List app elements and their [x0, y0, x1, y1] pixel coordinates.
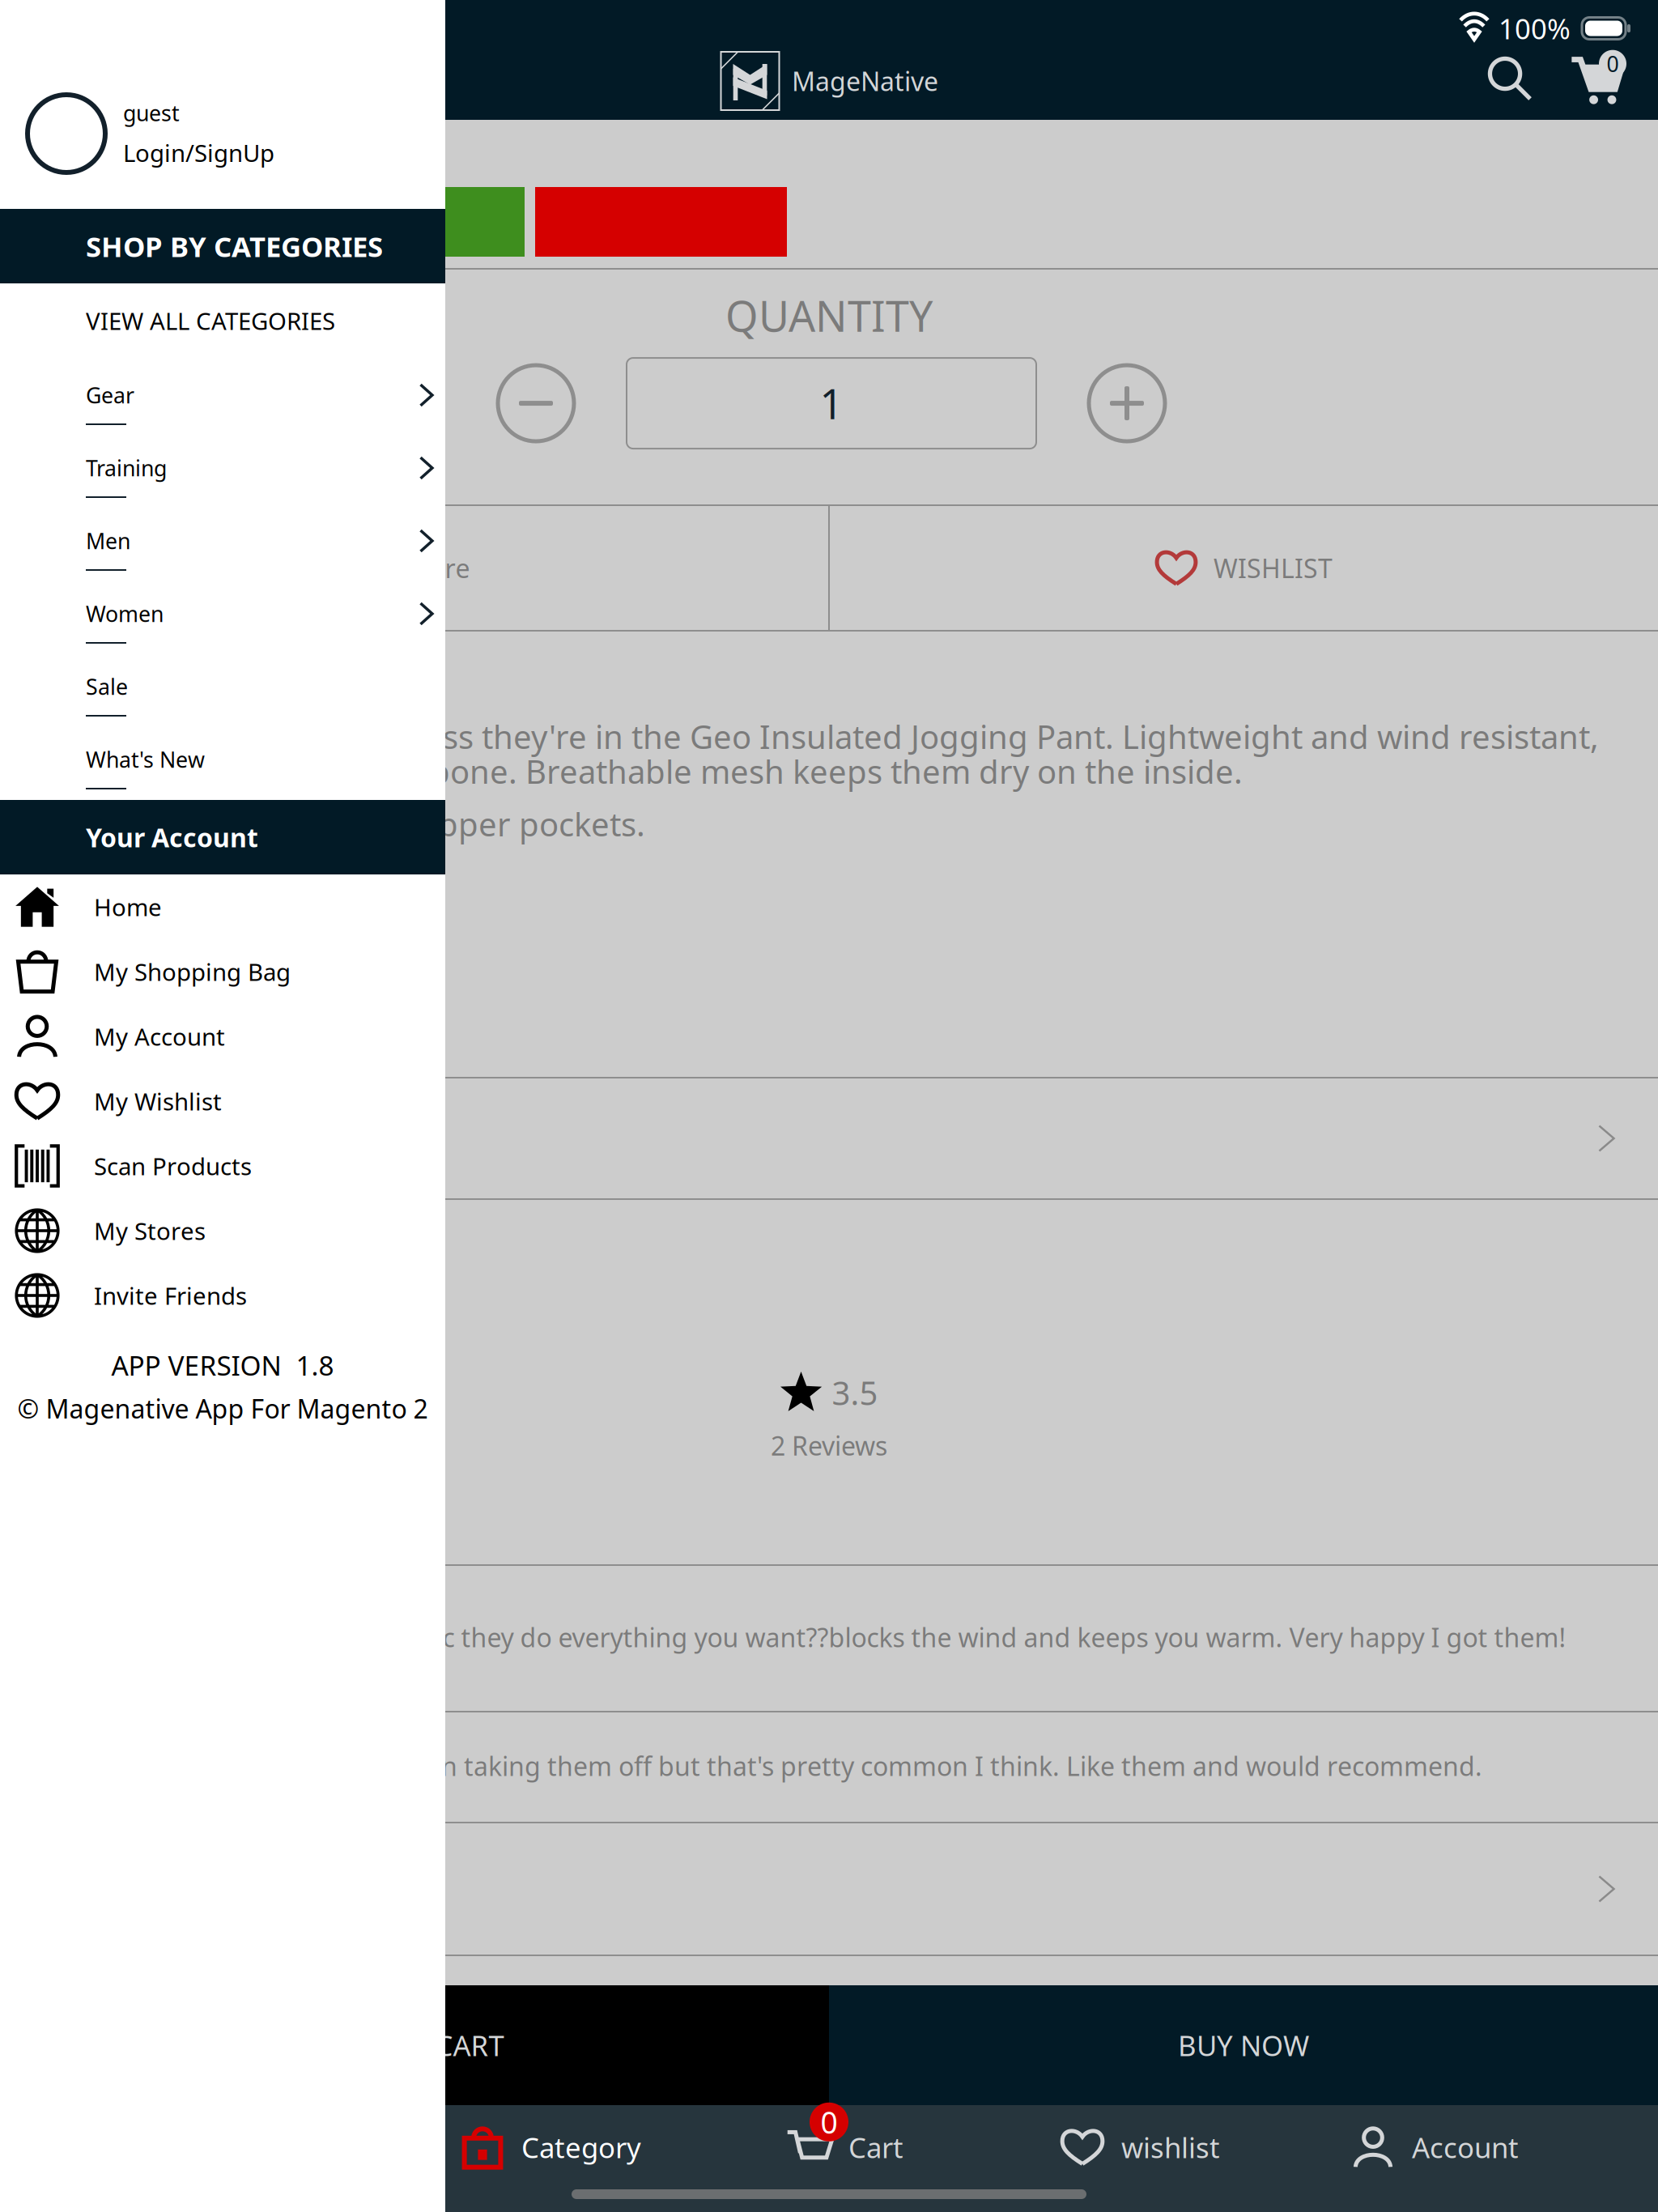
- staticText: MageNative: [792, 64, 938, 98]
- staticText: What's New: [86, 745, 205, 774]
- staticText: Category: [521, 2129, 641, 2166]
- button[interactable]: Men: [0, 508, 445, 581]
- staticText: guest: [123, 99, 180, 127]
- button[interactable]: MORE INFORMATION: [0, 1078, 1658, 1198]
- button[interactable]: WISHLIST: [830, 506, 1658, 630]
- button[interactable]: Increase quantity: [1080, 356, 1174, 450]
- button[interactable]: Customer Reviews: [0, 1823, 1658, 1955]
- staticText: Sale: [86, 672, 128, 701]
- button[interactable]: What's New: [0, 727, 445, 800]
- staticText: BUY NOW: [1178, 2027, 1309, 2064]
- button[interactable]: BUY NOW: [829, 1985, 1658, 2105]
- button[interactable]: Women: [0, 581, 445, 654]
- staticText: 1: [820, 376, 843, 430]
- staticText: Cart: [848, 2129, 903, 2166]
- staticText: 3.5: [832, 1371, 878, 1414]
- staticText: Gear: [86, 381, 134, 409]
- button[interactable]: 0: [696, 2110, 991, 2184]
- button[interactable]: Search: [1473, 42, 1545, 113]
- staticText: 0: [820, 2102, 838, 2142]
- button[interactable]: Category: [402, 2110, 696, 2184]
- staticText: WISHLIST: [1214, 551, 1333, 585]
- button[interactable]: guest: [0, 0, 445, 209]
- button[interactable]: My Stores: [0, 1198, 445, 1263]
- staticText: My Wishlist: [94, 1085, 222, 1117]
- button[interactable]: Sale: [0, 654, 445, 727]
- button[interactable]: Decrease quantity: [489, 356, 583, 450]
- button[interactable]: My Account: [0, 1004, 445, 1069]
- button[interactable]: VIEW ALL CATEGORIES: [0, 283, 445, 358]
- button[interactable]: Cart: [1562, 42, 1634, 113]
- staticText: My Stores: [94, 1215, 206, 1246]
- staticText: Training: [86, 454, 167, 482]
- staticText: 0: [1607, 49, 1619, 78]
- staticText: Login/SignUp: [123, 137, 274, 169]
- staticText: Invite Friends: [94, 1280, 247, 1311]
- staticText: 100%: [1499, 10, 1571, 47]
- button[interactable]: Scan Products: [0, 1134, 445, 1198]
- staticText: I wanted some new pants bc they do every…: [108, 1620, 1566, 1654]
- staticText: VIEW ALL CATEGORIES: [86, 305, 335, 336]
- button[interactable]: My Wishlist: [0, 1069, 445, 1134]
- button[interactable]: ADD TO CART: [0, 1985, 829, 2105]
- button[interactable]: Home: [0, 874, 445, 939]
- staticText: My Shopping Bag: [94, 956, 291, 987]
- staticText: Compare: [358, 551, 470, 585]
- staticText: Elastic waistband with zipper pockets.: [75, 802, 645, 845]
- button[interactable]: Compare: [0, 506, 828, 630]
- staticText: My Account: [94, 1021, 225, 1052]
- staticText: Account: [1412, 2129, 1519, 2166]
- staticText: © Magenative App For Magento 2: [17, 1391, 428, 1426]
- staticText: MORE INFORMATION: [16, 1120, 298, 1157]
- staticText: Men: [86, 527, 130, 555]
- staticText: Scan Products: [94, 1150, 252, 1182]
- staticText: APP VERSION 1.8: [111, 1347, 334, 1383]
- button[interactable]: Invite Friends: [0, 1263, 445, 1328]
- button[interactable]: My Shopping Bag: [0, 939, 445, 1004]
- staticText: SHOP BY CATEGORIES: [86, 228, 383, 265]
- staticText: they'll warm you to the bone. Breathable…: [75, 750, 1243, 793]
- staticText: Your Account: [86, 820, 258, 854]
- staticText: 2 Reviews: [771, 1428, 887, 1463]
- button[interactable]: wishlist: [991, 2110, 1286, 2184]
- staticText: Women: [86, 599, 164, 628]
- staticText: They kinda stick when taking them off bu…: [192, 1749, 1482, 1783]
- staticText: QUANTITY: [725, 287, 933, 343]
- button[interactable]: Gear: [0, 363, 445, 436]
- staticText: ADD TO CART: [325, 2027, 504, 2064]
- staticText: You'll always shiver, unless they're in …: [75, 715, 1599, 758]
- button[interactable]: Training: [0, 436, 445, 508]
- button[interactable]: Account: [1286, 2110, 1580, 2184]
- staticText: Home: [94, 891, 162, 923]
- staticText: wishlist: [1121, 2129, 1220, 2166]
